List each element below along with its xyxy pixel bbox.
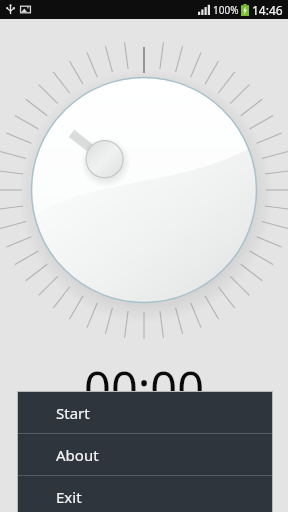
button[interactable]: Timer dial: [31, 77, 257, 303]
button[interactable]: About: [18, 434, 272, 475]
staticText: 14:46: [252, 2, 283, 18]
staticText: Start: [56, 403, 90, 423]
other: Screenshot: [20, 4, 31, 15]
other: Battery charging: [241, 4, 249, 16]
button[interactable]: Start: [18, 392, 272, 433]
button[interactable]: Exit: [18, 476, 272, 512]
other: USB connected: [5, 4, 16, 15]
staticText: 00:00: [84, 356, 205, 420]
other: Signal strength: [198, 4, 211, 15]
staticText: Exit: [56, 487, 82, 507]
staticText: 100%: [213, 3, 239, 17]
staticText: About: [56, 445, 99, 465]
